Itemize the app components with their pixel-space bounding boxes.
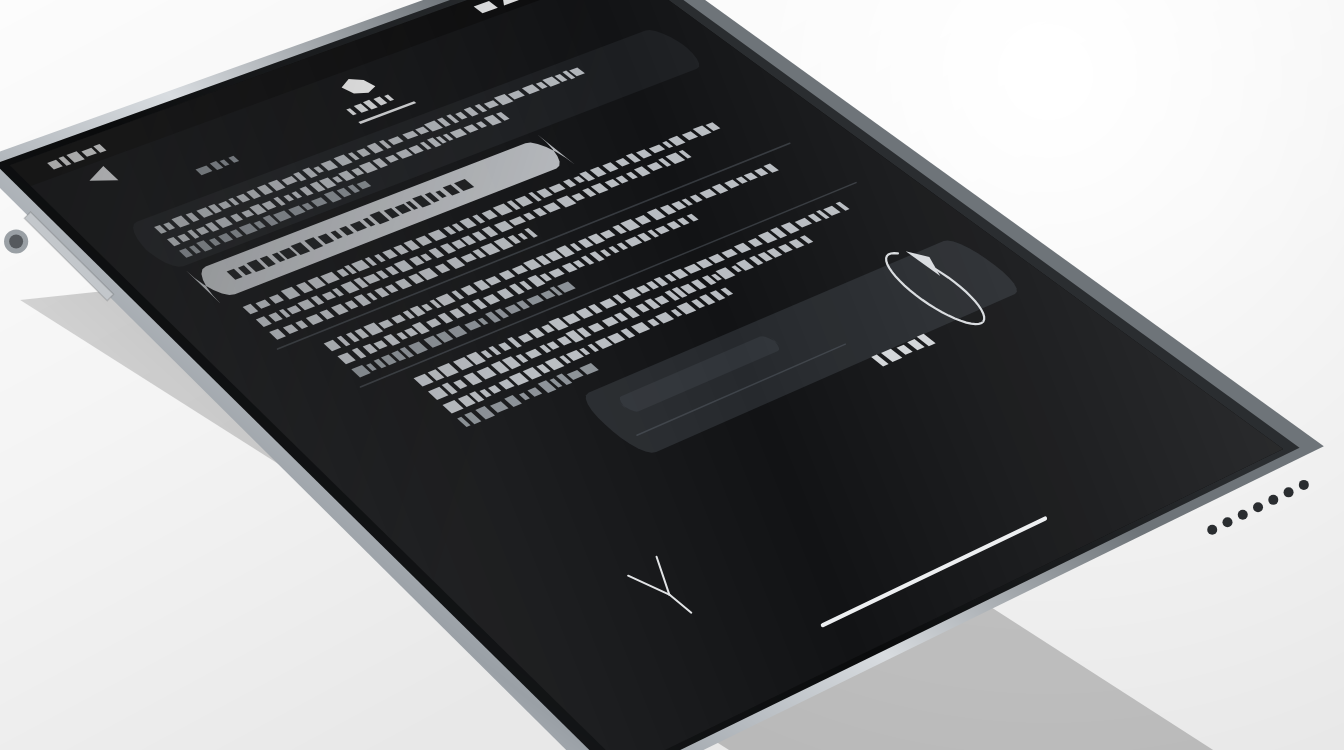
other: Chat screen on phone — [0, 0, 1344, 750]
